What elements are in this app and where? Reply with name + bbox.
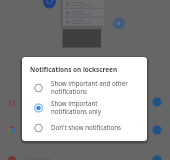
staticText: Show important and other — [51, 79, 128, 87]
staticText: Chrome — [24, 155, 51, 160]
staticText: Don't show notifications — [51, 123, 122, 131]
button[interactable]: Show important and other notifications — [22, 77, 147, 97]
button[interactable]: Google — [0, 123, 170, 137]
button[interactable]: Show important notifications only — [22, 97, 147, 117]
staticText: notifications only — [51, 107, 101, 115]
staticText: Notifications on lockscreen — [30, 65, 118, 74]
button[interactable]: Don't show notifications — [22, 117, 147, 137]
staticText: Google — [24, 125, 48, 135]
staticText: Show important — [51, 99, 98, 107]
staticText: Gmail — [24, 97, 44, 107]
button[interactable]: Gmail — [0, 95, 170, 109]
staticText: notifications — [51, 87, 87, 95]
staticText: M — [8, 98, 16, 106]
button[interactable]: Chrome — [0, 153, 170, 160]
